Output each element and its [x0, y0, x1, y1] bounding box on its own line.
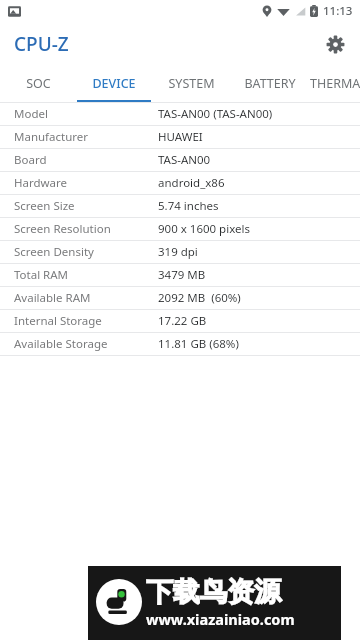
- staticText: Manufacturer: [14, 129, 158, 145]
- staticText: SYSTEM: [168, 75, 215, 92]
- button[interactable]: Available RAM: [0, 287, 360, 309]
- staticText: SOC: [26, 75, 51, 92]
- button[interactable]: THERMAL: [310, 66, 360, 102]
- staticText: TAS-AN00 (TAS-AN00): [158, 106, 273, 122]
- staticText: Screen Size: [14, 198, 158, 214]
- staticText: 下载鸟资源: [146, 575, 281, 609]
- button[interactable]: SYSTEM: [152, 66, 230, 102]
- staticText: Screen Resolution: [14, 221, 158, 237]
- button[interactable]: Total RAM: [0, 264, 360, 286]
- staticText: 2092 MB (60%): [158, 290, 241, 306]
- button[interactable]: Screen Density: [0, 241, 360, 263]
- staticText: Available RAM: [14, 290, 158, 306]
- button[interactable]: Hardware: [0, 172, 360, 194]
- staticText: Available Storage: [14, 336, 158, 352]
- staticText: 17.22 GB: [158, 313, 207, 329]
- staticText: TAS-AN00: [158, 152, 211, 168]
- staticText: Total RAM: [14, 267, 158, 283]
- staticText: DEVICE: [92, 75, 136, 92]
- staticText: Board: [14, 152, 158, 168]
- button[interactable]: Model: [0, 103, 360, 125]
- button[interactable]: DEVICE: [76, 66, 152, 102]
- button[interactable]: Available Storage: [0, 333, 360, 355]
- staticText: 11:13: [323, 3, 353, 19]
- button[interactable]: Screen Resolution: [0, 218, 360, 240]
- button[interactable]: Settings: [318, 27, 352, 61]
- staticText: CPU-Z: [14, 31, 69, 57]
- staticText: 11.81 GB (68%): [158, 336, 239, 352]
- staticText: 900 x 1600 pixels: [158, 221, 250, 237]
- staticText: 3479 MB: [158, 267, 206, 283]
- button[interactable]: Board: [0, 149, 360, 171]
- button[interactable]: BATTERY: [230, 66, 310, 102]
- staticText: BATTERY: [244, 75, 296, 92]
- button[interactable]: Manufacturer: [0, 126, 360, 148]
- staticText: Screen Density: [14, 244, 158, 260]
- staticText: HUAWEI: [158, 129, 203, 145]
- staticText: 5.74 inches: [158, 198, 219, 214]
- button[interactable]: Screen Size: [0, 195, 360, 217]
- staticText: Hardware: [14, 175, 158, 191]
- staticText: THERMAL: [310, 75, 360, 92]
- staticText: www.xiazainiao.com: [146, 609, 295, 629]
- staticText: Internal Storage: [14, 313, 158, 329]
- button[interactable]: Internal Storage: [0, 310, 360, 332]
- staticText: Model: [14, 106, 158, 122]
- button[interactable]: SOC: [0, 66, 76, 102]
- staticText: android_x86: [158, 175, 225, 191]
- staticText: 319 dpi: [158, 244, 198, 260]
